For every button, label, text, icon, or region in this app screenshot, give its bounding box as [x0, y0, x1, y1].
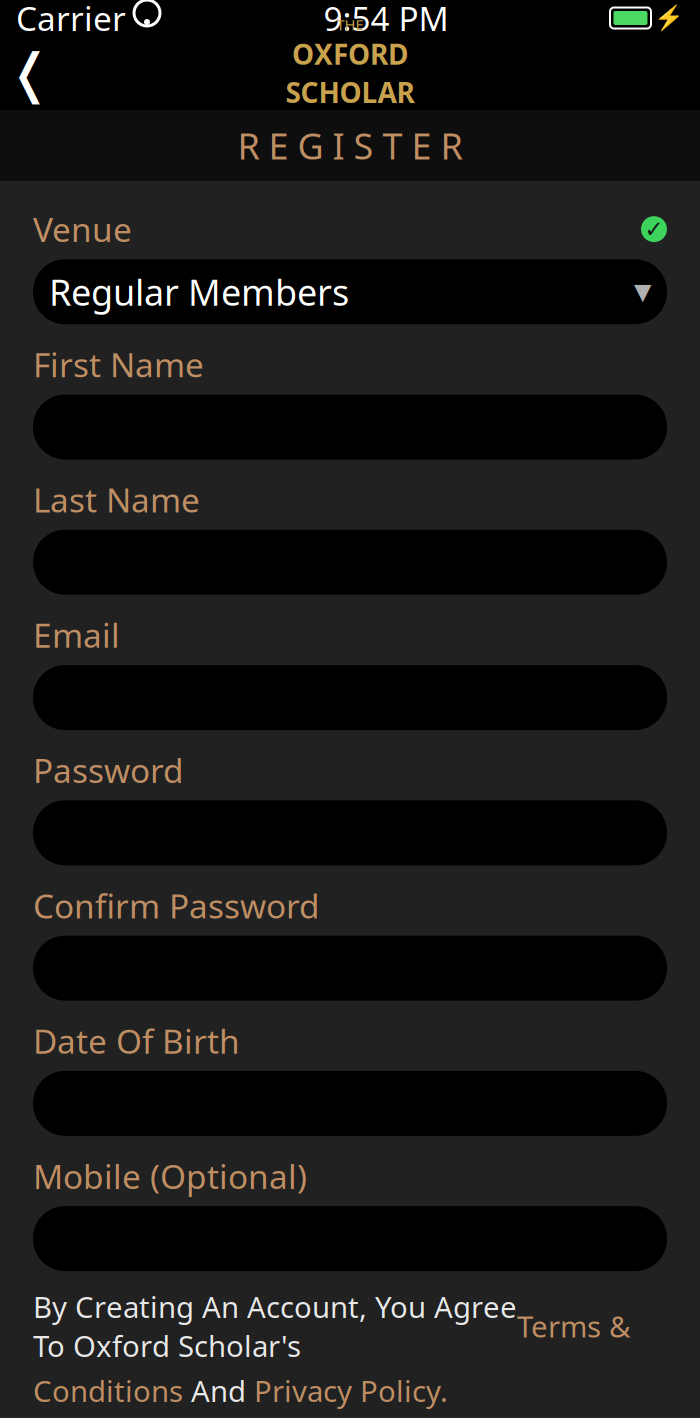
- staticText: Privacy Policy.: [254, 1371, 448, 1410]
- staticText: Mobile (Optional): [33, 1154, 307, 1198]
- staticText: R E G I S T E R: [237, 122, 462, 169]
- button[interactable]: First Name: [33, 394, 667, 459]
- button[interactable]: Mobile (Optional): [33, 1206, 667, 1271]
- button[interactable]: Email: [33, 665, 667, 730]
- staticText: Password: [33, 748, 184, 792]
- button[interactable]: Privacy Policy.: [254, 1371, 448, 1410]
- button[interactable]: Password: [33, 800, 667, 865]
- button[interactable]: Back: [0, 43, 60, 103]
- staticText: Email: [33, 613, 120, 657]
- button[interactable]: Conditions: [33, 1371, 183, 1410]
- staticText: And: [183, 1371, 254, 1410]
- staticText: OXFORD: [292, 35, 408, 72]
- staticText: Carrier: [16, 0, 126, 40]
- button[interactable]: Regular Members: [33, 259, 667, 324]
- staticText: Last Name: [33, 477, 200, 522]
- button[interactable]: Terms &: [517, 1307, 630, 1346]
- staticText: 9:54 PM: [323, 0, 448, 40]
- staticText: First Name: [33, 342, 204, 387]
- staticText: Regular Members: [49, 268, 349, 316]
- staticText: By Creating An Account, You Agree To Oxf…: [33, 1287, 517, 1365]
- button[interactable]: Date Of Birth: [33, 1071, 667, 1136]
- staticText: ❬: [7, 43, 52, 103]
- staticText: ✓: [644, 216, 663, 242]
- button[interactable]: Last Name: [33, 530, 667, 595]
- staticText: Date Of Birth: [33, 1019, 240, 1063]
- staticText: Confirm Password: [33, 883, 320, 928]
- staticText: THE: [336, 15, 363, 34]
- staticText: ▼: [634, 279, 651, 305]
- staticText: ⚡: [654, 4, 684, 32]
- button[interactable]: Confirm Password: [33, 936, 667, 1001]
- staticText: SCHOLAR: [285, 73, 414, 111]
- staticText: Terms &: [517, 1307, 630, 1346]
- staticText: Conditions: [33, 1371, 183, 1410]
- staticText: Venue: [33, 207, 132, 251]
